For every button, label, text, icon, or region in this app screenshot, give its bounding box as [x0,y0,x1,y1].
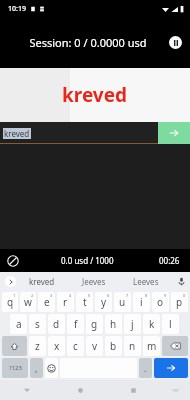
staticText: e [44,295,50,309]
button[interactable]: Stop [7,255,19,267]
staticText: 4 [69,293,72,298]
button[interactable]: h [105,314,122,334]
button[interactable]: Back [0,380,54,400]
staticText: n [129,339,136,353]
staticText: l [169,317,172,331]
button[interactable]: s [29,314,46,334]
staticText: 0.0 usd / 1000 [61,255,114,266]
staticText: 9 [164,293,167,298]
staticText: r [63,295,68,309]
button[interactable]: Pause [169,36,182,49]
button[interactable]: n [124,336,141,356]
staticText: c [73,339,78,353]
button[interactable]: u [114,292,131,312]
staticText: 2 [31,293,34,298]
staticText: i [140,295,143,309]
staticText: w [24,295,32,309]
staticText: Leeves [133,276,159,287]
staticText: Jeeves [82,276,106,287]
button[interactable]: v [86,336,103,356]
button[interactable]: Enter [154,358,188,378]
staticText: 00:26 [159,255,180,266]
button[interactable]: p [171,292,188,312]
staticText: , [35,362,38,374]
button[interactable]: e [38,292,55,312]
staticText: 0 [183,293,186,298]
button[interactable]: Emoji [45,358,58,378]
button[interactable]: Switch keyboard [160,380,190,400]
staticText: kreved [29,276,55,287]
staticText: 6 [107,293,110,298]
button[interactable]: Jeeves [68,272,120,291]
button[interactable]: r [57,292,74,312]
button[interactable]: c [67,336,84,356]
button[interactable]: t [76,292,93,312]
button[interactable]: Leeves [120,272,172,291]
button[interactable]: y [95,292,112,312]
staticText: Session: 0 / 0.0000 usd [29,35,147,50]
staticText: kreved [4,128,30,139]
staticText: k [149,317,155,331]
staticText: f [74,317,78,331]
button[interactable]: Backspace [162,336,188,356]
button[interactable]: Shift [2,336,27,356]
staticText: 8 [145,293,148,298]
button[interactable]: j [124,314,141,334]
staticText: o [157,295,164,309]
staticText: g [91,317,98,331]
staticText: kreved [62,82,128,108]
button[interactable]: kreved [0,122,158,144]
staticText: a [16,317,22,331]
button[interactable]: z [29,336,46,356]
button[interactable]: Voice input [172,272,190,291]
button[interactable]: d [48,314,65,334]
button[interactable]: x [48,336,65,356]
staticText: p [176,295,183,309]
staticText: h [110,317,117,331]
staticText: 1 [13,293,16,298]
staticText: 7 [126,293,129,298]
button[interactable]: q [2,292,18,312]
staticText: . [144,362,147,374]
staticText: t [83,295,87,309]
button[interactable]: k [143,314,160,334]
staticText: u [119,295,126,309]
staticText: m [147,339,157,353]
button[interactable]: i [133,292,150,312]
staticText: 3 [50,293,53,298]
staticText: d [53,317,60,331]
staticText: s [35,317,40,331]
button[interactable]: o [152,292,169,312]
button[interactable]: m [143,336,160,356]
button[interactable]: g [86,314,103,334]
staticText: 5 [88,293,91,298]
staticText: q [7,295,14,309]
button[interactable]: kreved [16,272,68,291]
button[interactable]: ?123 [2,358,28,378]
staticText: x [54,339,60,353]
button[interactable]: Home [54,380,107,400]
button[interactable]: w [20,292,36,312]
staticText: 10:19 [8,4,26,14]
staticText: ?123 [9,364,22,372]
button[interactable]: . [139,358,152,378]
staticText: b [110,339,117,353]
staticText: y [101,295,107,309]
staticText: z [35,339,40,353]
button[interactable]: a [10,314,27,334]
button[interactable]: l [162,314,179,334]
button[interactable]: Send [158,122,190,144]
button[interactable]: , [30,358,43,378]
staticText: j [131,317,134,331]
button[interactable]: Recents [107,380,160,400]
button[interactable]: Expand suggestions [5,276,16,287]
button[interactable]: b [105,336,122,356]
staticText: v [92,339,98,353]
button[interactable]: f [67,314,84,334]
